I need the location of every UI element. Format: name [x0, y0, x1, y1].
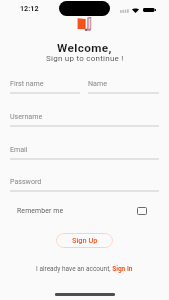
staticText: Name: [88, 79, 107, 87]
staticText: Welcome,: [57, 41, 112, 55]
button[interactable]: Password: [10, 174, 159, 192]
button[interactable]: Sign Up: [56, 233, 113, 248]
other: Logo: [76, 16, 93, 32]
staticText: Sign up to continue !: [46, 54, 124, 63]
button[interactable]: Email: [10, 142, 159, 160]
staticText: First name: [10, 79, 44, 87]
button[interactable]: First name: [10, 76, 80, 94]
staticText: Remember me: [17, 207, 64, 215]
button[interactable]: I already have an account, Sign In: [36, 265, 133, 273]
staticText: 12:12: [20, 4, 39, 12]
staticText: Username: [10, 112, 43, 120]
button[interactable]: Remember me: [12, 203, 157, 218]
button[interactable]: Username: [10, 109, 159, 127]
button[interactable]: Name: [88, 76, 159, 94]
staticText: Email: [10, 145, 28, 153]
staticText: Sign Up: [72, 236, 98, 245]
staticText: Password: [10, 177, 42, 185]
